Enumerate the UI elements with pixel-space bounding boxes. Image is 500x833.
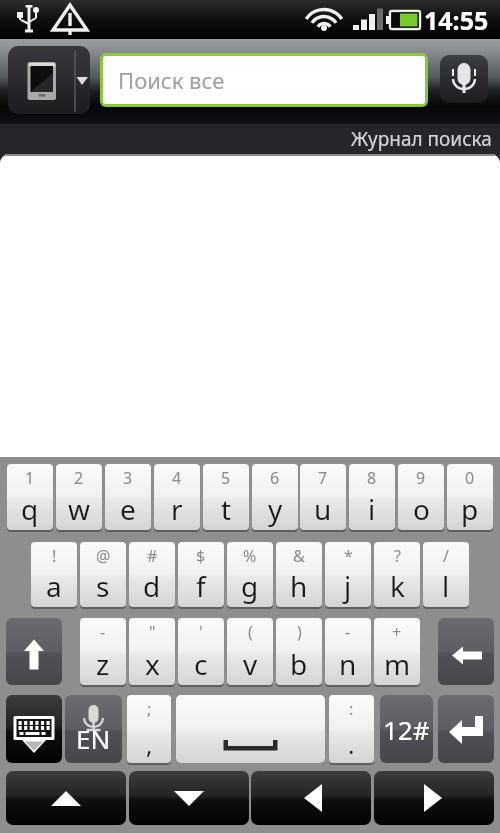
staticText: z: [96, 645, 110, 683]
button[interactable]: 5: [203, 464, 249, 530]
staticText: Журнал поиска: [351, 126, 492, 152]
button[interactable]: Down: [129, 771, 249, 825]
staticText: /: [443, 545, 449, 567]
button[interactable]: @: [80, 542, 126, 607]
staticText: 1: [25, 467, 35, 489]
staticText: ): [297, 621, 302, 643]
staticText: ': [199, 621, 203, 643]
staticText: :: [349, 698, 354, 720]
staticText: 5: [221, 467, 231, 489]
staticText: 2: [74, 467, 84, 489]
staticText: x: [145, 645, 160, 683]
button[interactable]: /: [423, 542, 469, 607]
staticText: -: [100, 621, 106, 643]
button[interactable]: Enter: [438, 695, 494, 763]
staticText: $: [196, 545, 206, 567]
button[interactable]: ;: [127, 695, 171, 763]
button[interactable]: ): [276, 618, 322, 685]
button[interactable]: Поиск все: [103, 56, 425, 104]
staticText: b: [290, 645, 308, 683]
button[interactable]: 4: [154, 464, 200, 530]
button[interactable]: 6: [252, 464, 298, 530]
button[interactable]: 2: [56, 464, 102, 530]
button[interactable]: ": [129, 618, 175, 685]
staticText: k: [390, 567, 405, 605]
button[interactable]: Voice search: [440, 55, 488, 103]
staticText: a: [46, 567, 62, 605]
button[interactable]: %: [227, 542, 273, 607]
button[interactable]: Voice input, language EN: [65, 695, 122, 763]
staticText: ;: [147, 698, 152, 720]
staticText: Поиск все: [118, 65, 225, 95]
staticText: 12#: [383, 712, 430, 747]
staticText: w: [68, 490, 91, 528]
button[interactable]: Left: [251, 771, 371, 825]
staticText: n: [339, 645, 357, 683]
staticText: h: [290, 567, 308, 605]
staticText: m: [384, 645, 411, 683]
staticText: ": [149, 621, 156, 643]
button[interactable]: 7: [300, 464, 346, 530]
staticText: y: [268, 490, 283, 528]
staticText: s: [96, 567, 110, 605]
staticText: i: [368, 490, 376, 528]
staticText: 0: [465, 467, 475, 489]
button[interactable]: *: [325, 542, 371, 607]
button[interactable]: ': [178, 618, 224, 685]
button[interactable]: Search scope: [8, 46, 90, 114]
button[interactable]: -: [80, 618, 126, 685]
staticText: .: [348, 728, 355, 761]
staticText: #: [147, 545, 158, 567]
button[interactable]: +: [374, 618, 420, 685]
staticText: -: [345, 621, 351, 643]
button[interactable]: 8: [349, 464, 395, 530]
staticText: p: [461, 490, 479, 528]
button[interactable]: !: [31, 542, 77, 607]
staticText: (: [248, 621, 253, 643]
button[interactable]: Up: [6, 771, 126, 825]
staticText: q: [21, 490, 39, 528]
staticText: EN: [76, 721, 111, 756]
button[interactable]: 12#: [380, 695, 433, 763]
button[interactable]: &: [276, 542, 322, 607]
staticText: r: [171, 490, 183, 528]
button[interactable]: ?: [374, 542, 420, 607]
staticText: v: [243, 645, 258, 683]
staticText: g: [241, 567, 259, 605]
staticText: 14:55: [424, 3, 489, 37]
staticText: 9: [416, 467, 426, 489]
staticText: d: [143, 567, 161, 605]
staticText: 3: [123, 467, 133, 489]
staticText: l: [442, 567, 450, 605]
button[interactable]: Right: [374, 771, 494, 825]
staticText: 7: [318, 467, 328, 489]
staticText: &: [293, 545, 305, 567]
button[interactable]: 3: [105, 464, 151, 530]
button[interactable]: Hide keyboard: [6, 695, 62, 763]
button[interactable]: -: [325, 618, 371, 685]
button[interactable]: $: [178, 542, 224, 607]
staticText: j: [344, 567, 352, 605]
button[interactable]: 1: [7, 464, 53, 530]
staticText: u: [314, 490, 332, 528]
staticText: 8: [367, 467, 377, 489]
button[interactable]: (: [227, 618, 273, 685]
button[interactable]: :: [329, 695, 374, 763]
button[interactable]: Backspace: [438, 618, 494, 685]
staticText: t: [221, 490, 232, 528]
staticText: e: [120, 490, 136, 528]
staticText: o: [413, 490, 430, 528]
button[interactable]: 0: [447, 464, 493, 530]
button[interactable]: Shift: [6, 618, 62, 685]
staticText: 4: [172, 467, 182, 489]
button[interactable]: #: [129, 542, 175, 607]
button[interactable]: 9: [398, 464, 444, 530]
staticText: *: [344, 545, 353, 567]
staticText: %: [243, 545, 257, 567]
staticText: 6: [270, 467, 280, 489]
staticText: f: [196, 567, 206, 605]
button[interactable]: Space: [176, 695, 325, 763]
staticText: @: [96, 545, 111, 567]
staticText: ?: [394, 545, 401, 567]
staticText: ,: [146, 728, 153, 761]
